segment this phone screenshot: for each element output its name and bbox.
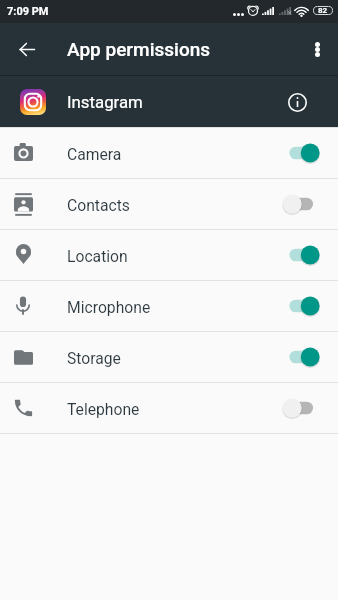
- staticText: Telephone: [67, 400, 140, 418]
- staticText: Storage: [67, 349, 121, 367]
- staticText: Camera: [67, 145, 122, 163]
- button[interactable]: Microphone permission toggle: [283, 283, 321, 329]
- button[interactable]: Contacts permission toggle: [283, 181, 321, 227]
- staticText: Microphone: [67, 298, 151, 316]
- button[interactable]: More options: [296, 28, 338, 70]
- button[interactable]: Telephone permission toggle: [283, 385, 321, 431]
- button[interactable]: App info: [273, 78, 321, 126]
- button[interactable]: Instagram: [0, 76, 338, 127]
- staticText: Location: [67, 247, 128, 265]
- button[interactable]: Back: [3, 25, 51, 73]
- staticText: Instagram: [67, 92, 143, 112]
- button[interactable]: Location: [0, 230, 338, 280]
- staticText: Contacts: [67, 196, 130, 214]
- button[interactable]: Telephone: [0, 383, 338, 433]
- button[interactable]: Storage permission toggle: [283, 334, 321, 380]
- button[interactable]: Camera: [0, 128, 338, 178]
- staticText: 82: [318, 6, 328, 15]
- button[interactable]: Contacts: [0, 179, 338, 229]
- button[interactable]: Camera permission toggle: [283, 130, 321, 176]
- button[interactable]: Microphone: [0, 281, 338, 331]
- button[interactable]: Location permission toggle: [283, 232, 321, 278]
- staticText: App permissions: [67, 38, 211, 60]
- button[interactable]: Storage: [0, 332, 338, 382]
- staticText: 7:09 PM: [7, 5, 49, 18]
